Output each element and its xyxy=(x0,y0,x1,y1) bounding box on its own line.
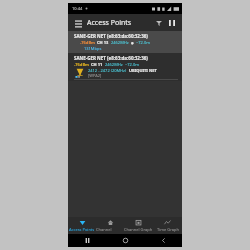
staticText: Access Points xyxy=(87,18,132,28)
staticText: Time Graph xyxy=(157,227,179,232)
button[interactable]: Time Graph xyxy=(153,217,182,234)
button[interactable]: Open navigation drawer xyxy=(73,18,83,28)
staticText: CH 13 xyxy=(97,40,109,45)
staticText: 2462MHz xyxy=(105,62,123,67)
staticText: ● xyxy=(131,41,134,44)
button[interactable]: SANE-GER NET (e8:63:da:60:32:36) xyxy=(68,53,182,81)
staticText: ~72.0m xyxy=(125,62,139,67)
staticText: 2462MHz xyxy=(111,40,129,45)
staticText: Access Points xyxy=(69,227,95,232)
button[interactable]: Home xyxy=(106,234,144,247)
staticText: 131Mbps xyxy=(84,46,102,51)
button[interactable]: SANE-GER NET (e8:63:da:60:32:36) xyxy=(68,31,182,53)
button[interactable]: Access Points xyxy=(68,217,96,234)
staticText: Channel Graph xyxy=(124,227,153,232)
staticText: -76dBm xyxy=(74,62,89,67)
staticText: CH 11 xyxy=(91,62,103,67)
staticText: UBIQUITI NET xyxy=(129,68,157,73)
button[interactable]: Channel Graph xyxy=(124,217,153,234)
staticText: SANE-GER NET (e8:63:da:60:32:36) xyxy=(74,55,148,61)
button[interactable]: Recent apps xyxy=(68,234,106,247)
button[interactable]: Channel Rating xyxy=(96,217,124,234)
staticText: Channel Rating xyxy=(96,227,124,232)
staticText: ~72.0m xyxy=(136,40,150,45)
button[interactable]: Filter xyxy=(154,18,164,28)
staticText: 2412 - 2472 (20MHz) xyxy=(88,68,127,73)
staticText: -76dBm xyxy=(80,40,95,45)
button[interactable]: Pause scanning xyxy=(167,18,177,28)
staticText: 10:44 xyxy=(72,6,83,11)
staticText: SANE-GER NET (e8:63:da:60:32:36) xyxy=(74,33,148,39)
staticText: [WPA2] xyxy=(88,73,102,78)
button[interactable]: Back xyxy=(144,234,182,247)
